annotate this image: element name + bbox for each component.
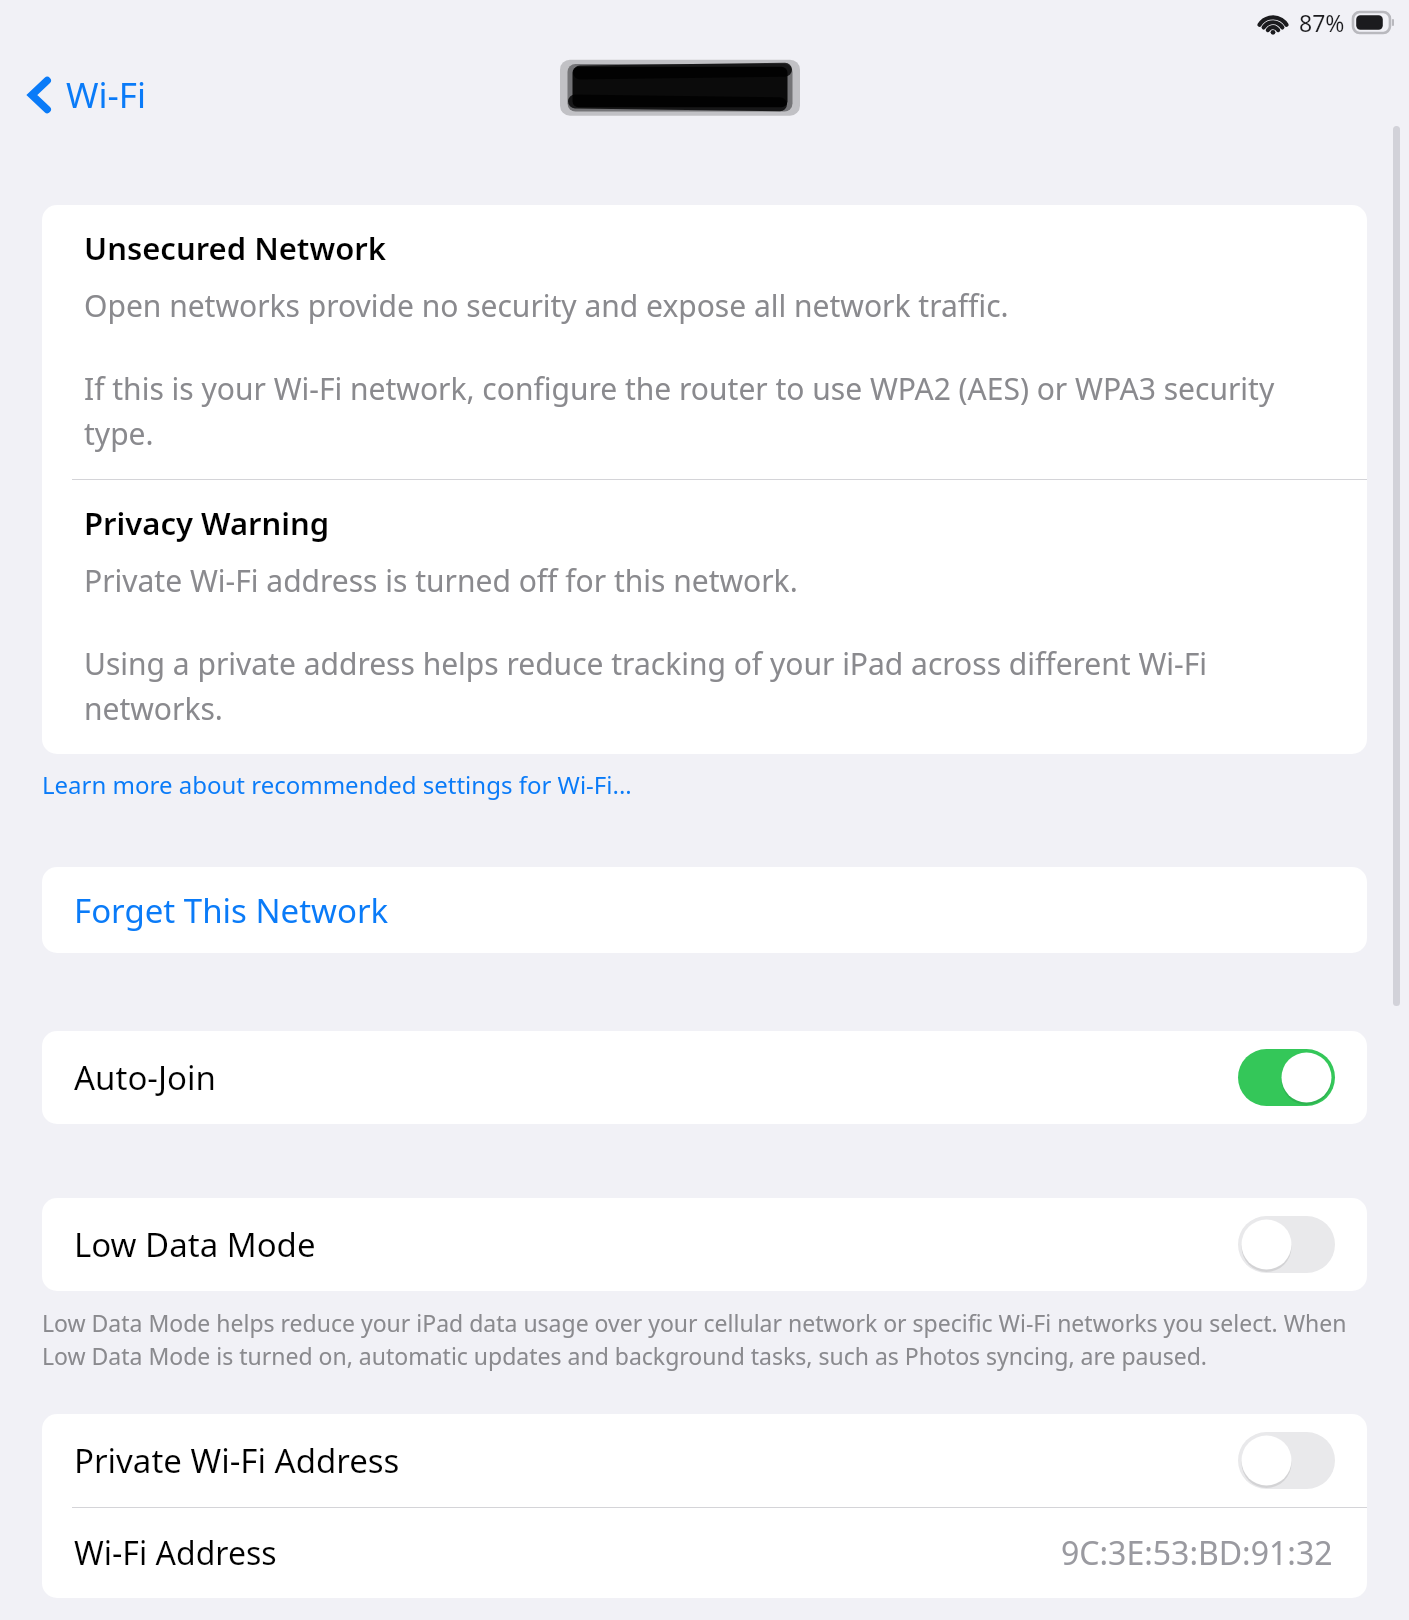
staticText: 9C:3E:53:BD:91:32 [1061,1531,1333,1575]
staticText: 87% [1299,7,1345,38]
button[interactable]: Forget This Network [42,867,1367,953]
staticText: Privacy Warning [84,502,330,544]
button[interactable]: Wi-Fi [22,65,153,125]
button[interactable]: Off [1238,1432,1335,1489]
button[interactable]: Private Wi-Fi Address [42,1414,1367,1507]
staticText: Open networks provide no security and ex… [84,285,1009,326]
staticText: Low Data Mode [74,1222,316,1267]
staticText: If this is your Wi-Fi network, configure… [84,368,1333,453]
button[interactable]: Low Data Mode [42,1198,1367,1291]
button[interactable]: Wi-Fi Address [42,1508,1367,1598]
staticText: Unsecured Network [84,227,386,269]
staticText: Private Wi-Fi address is turned off for … [84,560,798,601]
staticText: Learn more about recommended settings fo… [42,768,632,801]
staticText: Using a private address helps reduce tra… [84,643,1333,728]
staticText: Forget This Network [74,888,389,933]
staticText: Private Wi-Fi Address [74,1438,400,1483]
button[interactable]: Off [1238,1216,1335,1273]
staticText: Wi-Fi Address [74,1531,277,1575]
staticText: Wi-Fi [66,71,147,119]
button[interactable]: On [1238,1049,1335,1106]
staticText: Low Data Mode helps reduce your iPad dat… [42,1307,1359,1372]
button[interactable]: Auto-Join [42,1031,1367,1124]
button[interactable]: Learn more about recommended settings fo… [42,768,632,801]
staticText: Auto-Join [74,1055,216,1100]
